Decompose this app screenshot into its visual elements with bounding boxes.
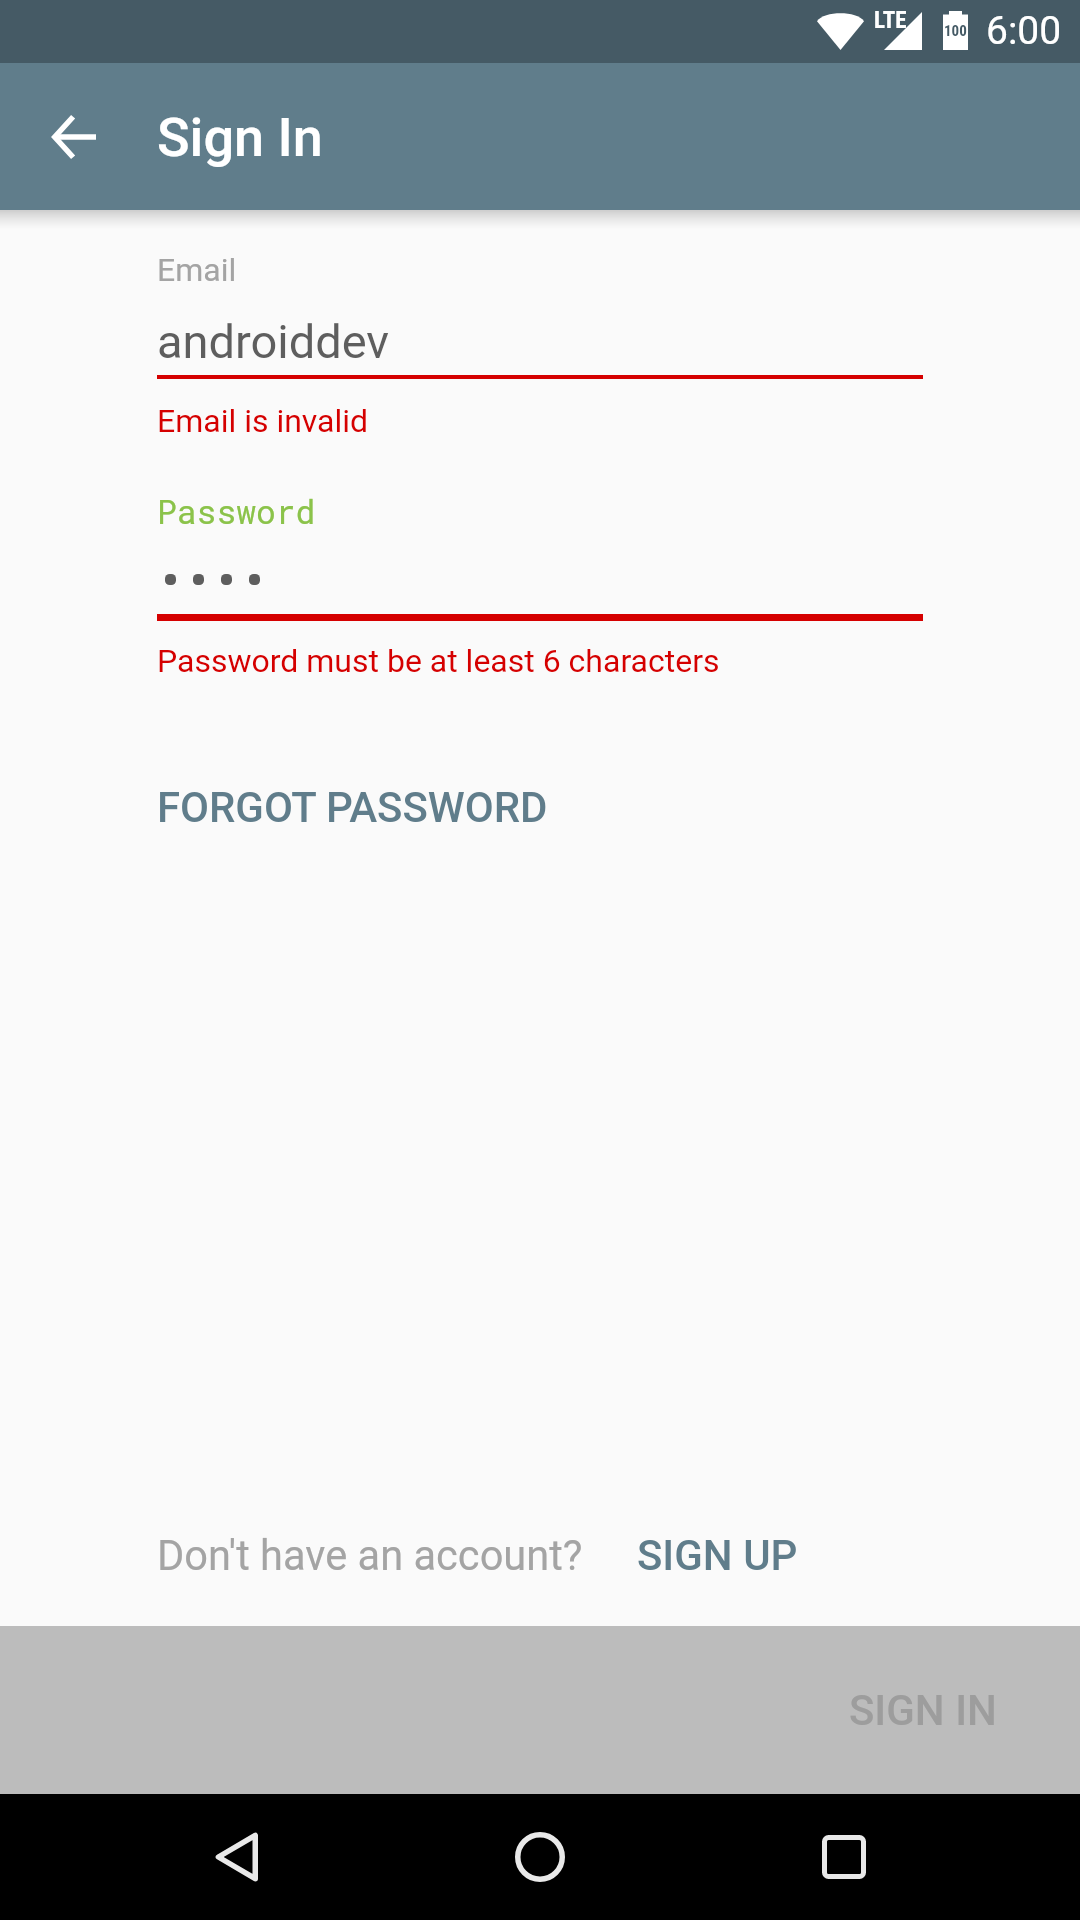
staticText: 6:00 (986, 8, 1062, 54)
button[interactable]: SIGN IN (0, 1626, 1080, 1794)
button[interactable]: Email field (157, 251, 923, 379)
staticText: 100 (944, 22, 967, 40)
staticText: Password must be at least 6 characters (157, 642, 720, 680)
button[interactable]: SIGN UP (621, 1517, 814, 1594)
button[interactable]: Back (26, 89, 122, 185)
staticText: SIGN UP (637, 1531, 798, 1580)
staticText: SIGN IN (849, 1686, 997, 1735)
staticText: Sign In (157, 106, 323, 169)
staticText: Don't have an account? (157, 1531, 583, 1580)
staticText: Email is invalid (157, 402, 369, 440)
button[interactable]: FORGOT PASSWORD (141, 766, 564, 849)
staticText: Email (157, 251, 237, 289)
staticText: FORGOT PASSWORD (157, 783, 548, 832)
staticText: Password (157, 489, 316, 533)
staticText: androiddev (157, 314, 390, 369)
button[interactable]: Back (180, 1801, 292, 1913)
button[interactable]: Home (484, 1801, 596, 1913)
button[interactable]: Recent apps (788, 1801, 900, 1913)
staticText: LTE (874, 7, 907, 34)
button[interactable]: Password field (157, 489, 923, 621)
